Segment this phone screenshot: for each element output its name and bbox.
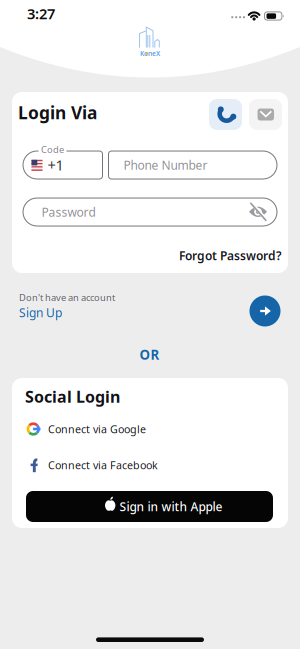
staticText: OR	[139, 346, 159, 363]
staticText: Don't have an account	[19, 291, 115, 304]
staticText: Social Login	[25, 386, 120, 407]
button[interactable]: Forgot Password?	[0, 0, 300, 649]
button[interactable]: Login via email	[0, 0, 300, 649]
staticText: +1	[47, 155, 63, 175]
staticText: Phone Number	[123, 157, 207, 173]
button[interactable]: Continue	[0, 0, 300, 649]
button[interactable]: Show password	[0, 0, 300, 649]
button[interactable]: Connect via Facebook	[0, 0, 300, 649]
staticText: Login Via	[18, 101, 97, 124]
button[interactable]: Sign Up	[0, 0, 300, 649]
staticText: Password	[41, 204, 95, 220]
staticText: Forgot Password?	[179, 247, 282, 263]
staticText: Sign Up	[19, 304, 62, 320]
staticText: Sign in with Apple	[119, 498, 222, 514]
button[interactable]: Sign in with Apple	[0, 0, 300, 649]
staticText: Code	[41, 143, 64, 156]
staticText: Connect via Google	[48, 422, 146, 436]
staticText: KoneX	[140, 49, 160, 58]
button[interactable]: Connect via Google	[0, 0, 300, 649]
staticText: Connect via Facebook	[48, 458, 158, 472]
staticText: 3:27	[27, 4, 55, 23]
button[interactable]: Login via phone	[0, 0, 300, 649]
